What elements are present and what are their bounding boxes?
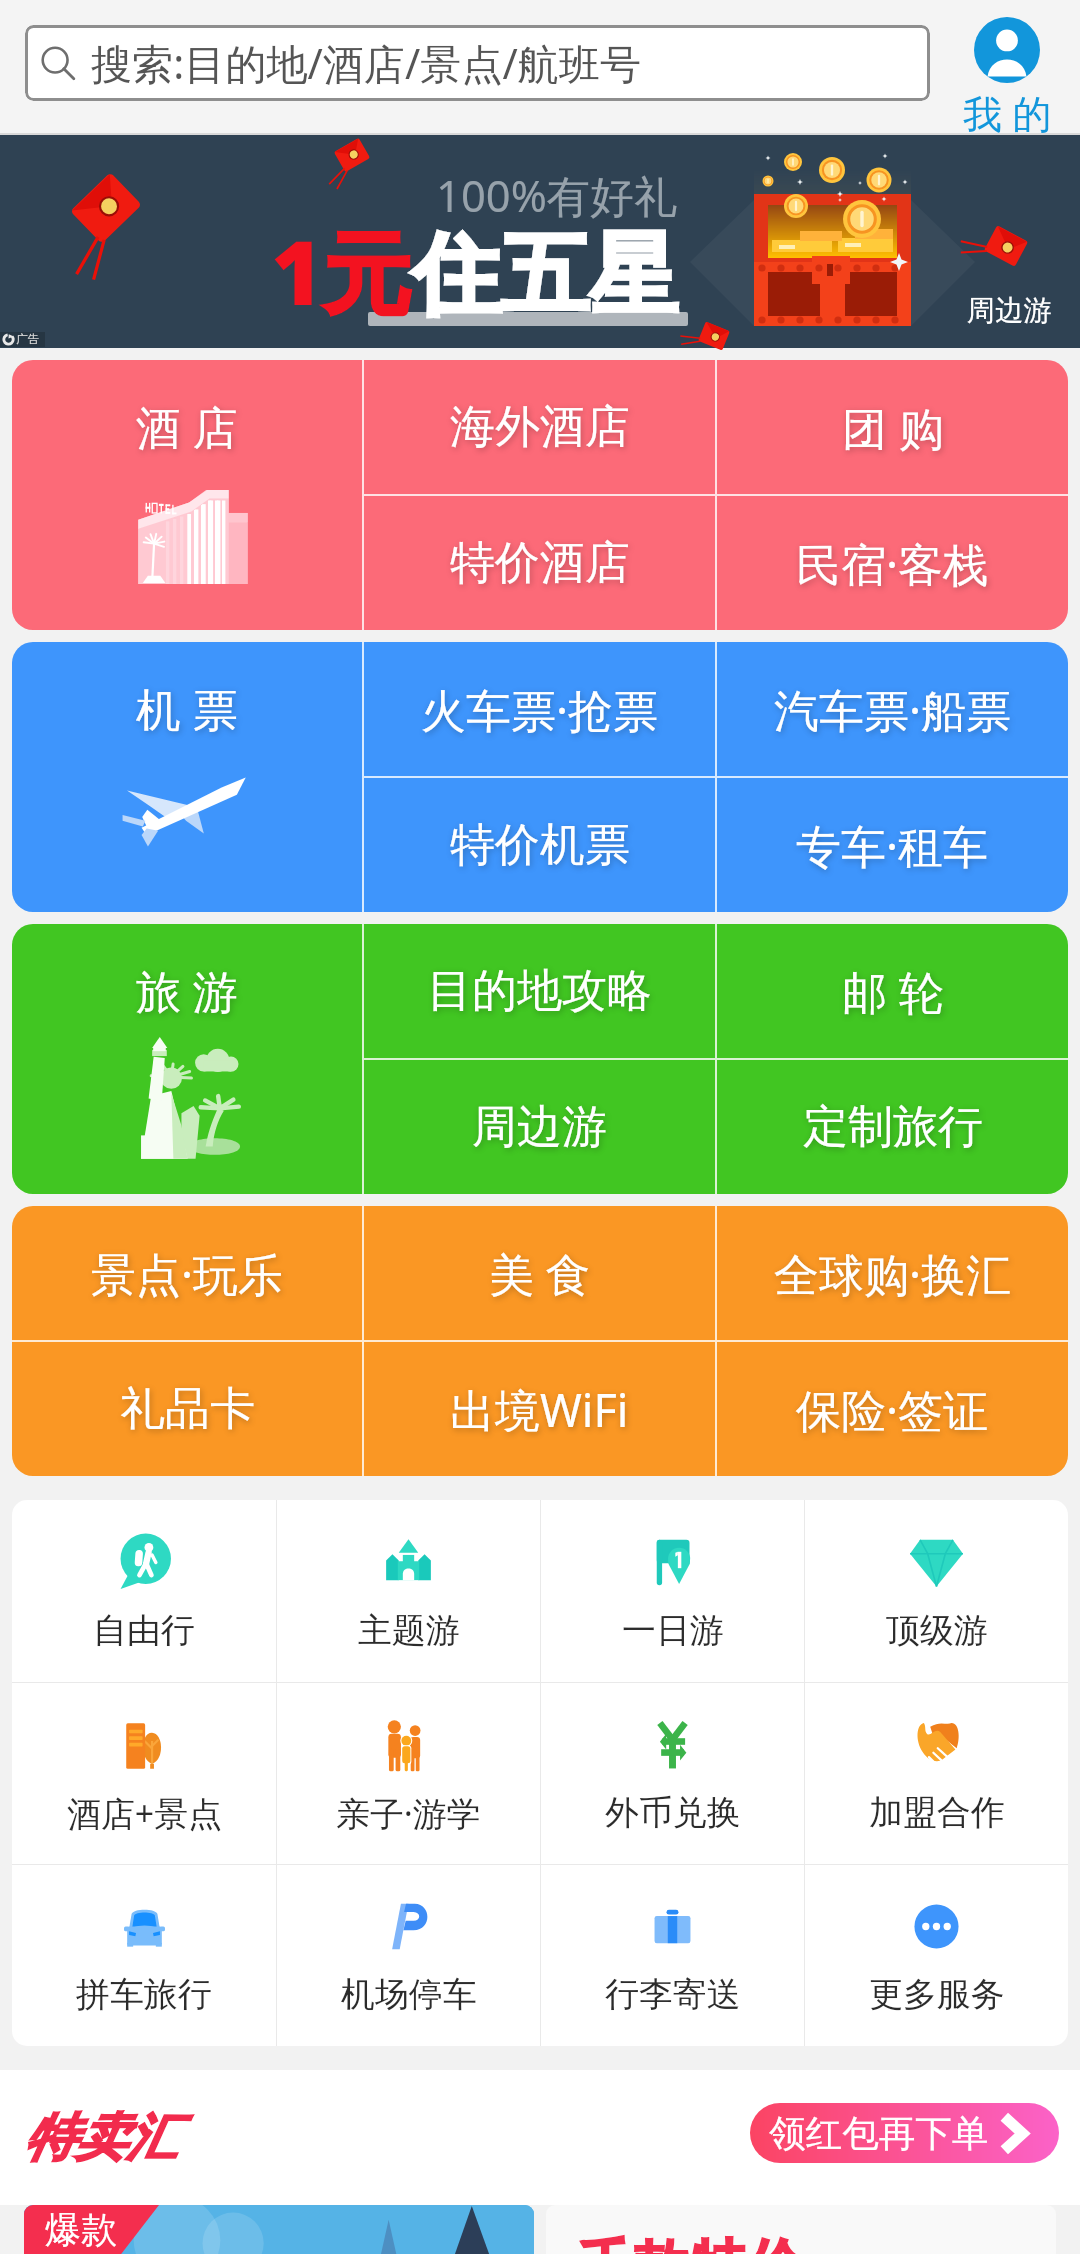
button[interactable]: 目的地攻略	[364, 924, 715, 1058]
button[interactable]: 机场停车	[277, 1865, 540, 2046]
staticText: 出境WiFi	[450, 1379, 629, 1440]
staticText: 酒 店	[136, 396, 238, 457]
button[interactable]: 酒 店	[12, 360, 362, 630]
staticText: 1元	[271, 210, 412, 331]
staticText: 海外酒店	[450, 399, 630, 456]
button[interactable]: 加盟合作	[805, 1683, 1068, 1864]
staticText: 特卖汇	[24, 2106, 177, 2170]
staticText: 亲子·游学	[336, 1790, 481, 1836]
staticText: 目的地攻略	[427, 963, 652, 1020]
button[interactable]: 火车票·抢票	[364, 642, 715, 776]
button[interactable]: 千款特价	[546, 2205, 1056, 2254]
staticText: 火车票·抢票	[421, 679, 659, 740]
staticText: 顶级游	[886, 1609, 988, 1652]
button[interactable]: 亲子·游学	[277, 1683, 540, 1864]
staticText: 保险·签证	[796, 1379, 989, 1440]
button[interactable]: 周边游	[364, 1060, 715, 1194]
staticText: 全球购·换汇	[774, 1243, 1012, 1304]
staticText: 民宿·客栈	[796, 533, 989, 594]
staticText: 住五星	[412, 220, 678, 331]
button[interactable]: 机 票	[12, 642, 362, 912]
staticText: 千款特价	[576, 2231, 804, 2254]
staticText: 100%有好礼	[436, 165, 678, 224]
staticText: 旅 游	[136, 960, 238, 1021]
button[interactable]: 旅 游	[12, 924, 362, 1194]
button[interactable]: 搜索:目的地/酒店/景点/航班号	[25, 25, 930, 101]
button[interactable]: 拼车旅行	[12, 1865, 276, 2046]
button[interactable]: 礼品卡	[12, 1342, 362, 1476]
staticText: 一日游	[622, 1609, 724, 1652]
staticText: 广告	[16, 332, 40, 347]
staticText: 加盟合作	[869, 1791, 1005, 1834]
staticText: 定制旅行	[803, 1099, 983, 1156]
staticText: 周边游	[472, 1099, 607, 1156]
button[interactable]: 专车·租车	[717, 778, 1068, 912]
staticText: 领红包再下单	[769, 2111, 989, 2157]
button[interactable]: 邮 轮	[717, 924, 1068, 1058]
button[interactable]: 一日游	[541, 1500, 804, 1682]
button[interactable]: 海外酒店	[364, 360, 715, 494]
button[interactable]: 民宿·客栈	[717, 496, 1068, 630]
button[interactable]: 我的	[941, 12, 1073, 135]
button[interactable]: 保险·签证	[717, 1342, 1068, 1476]
button[interactable]: 领红包再下单	[750, 2103, 1059, 2163]
staticText: 周边游	[967, 293, 1052, 329]
button[interactable]: 自由行	[12, 1500, 276, 1682]
staticText: 更多服务	[869, 1973, 1005, 2016]
staticText: 特价机票	[450, 817, 630, 874]
button[interactable]: 特价机票	[364, 778, 715, 912]
staticText: 邮 轮	[842, 961, 944, 1022]
staticText: 酒店+景点	[67, 1790, 222, 1836]
button[interactable]: 汽车票·船票	[717, 642, 1068, 776]
button[interactable]: 顶级游	[805, 1500, 1068, 1682]
staticText: 机场停车	[341, 1973, 477, 2016]
staticText: 行李寄送	[605, 1973, 741, 2016]
staticText: 外币兑换	[605, 1791, 741, 1834]
staticText: 自由行	[93, 1609, 195, 1652]
staticText: 景点·玩乐	[91, 1243, 284, 1304]
button[interactable]: 定制旅行	[717, 1060, 1068, 1194]
staticText: 拼车旅行	[76, 1973, 212, 2016]
button[interactable]: 爆款	[24, 2205, 534, 2254]
button[interactable]: 外币兑换	[541, 1683, 804, 1864]
button[interactable]: 酒店+景点	[12, 1683, 276, 1864]
staticText: 汽车票·船票	[774, 679, 1012, 740]
button[interactable]: 景点·玩乐	[12, 1206, 362, 1340]
staticText: 专车·租车	[796, 815, 989, 876]
staticText: 爆款	[45, 2207, 117, 2252]
button[interactable]: 全球购·换汇	[717, 1206, 1068, 1340]
staticText: 我 的	[963, 86, 1052, 135]
button[interactable]: 行李寄送	[541, 1865, 804, 2046]
button[interactable]: 100%有好礼	[0, 135, 1080, 348]
button[interactable]: 特价酒店	[364, 496, 715, 630]
staticText: 机 票	[136, 678, 238, 739]
button[interactable]: 出境WiFi	[364, 1342, 715, 1476]
staticText: 礼品卡	[120, 1381, 255, 1438]
staticText: 团 购	[842, 397, 944, 458]
button[interactable]: 美 食	[364, 1206, 715, 1340]
button[interactable]: 团 购	[717, 360, 1068, 494]
staticText: 主题游	[358, 1609, 460, 1652]
button[interactable]: 主题游	[277, 1500, 540, 1682]
button[interactable]: 更多服务	[805, 1865, 1068, 2046]
staticText: 搜索:目的地/酒店/景点/航班号	[91, 35, 641, 91]
staticText: 特价酒店	[450, 535, 630, 592]
staticText: 美 食	[489, 1243, 591, 1304]
